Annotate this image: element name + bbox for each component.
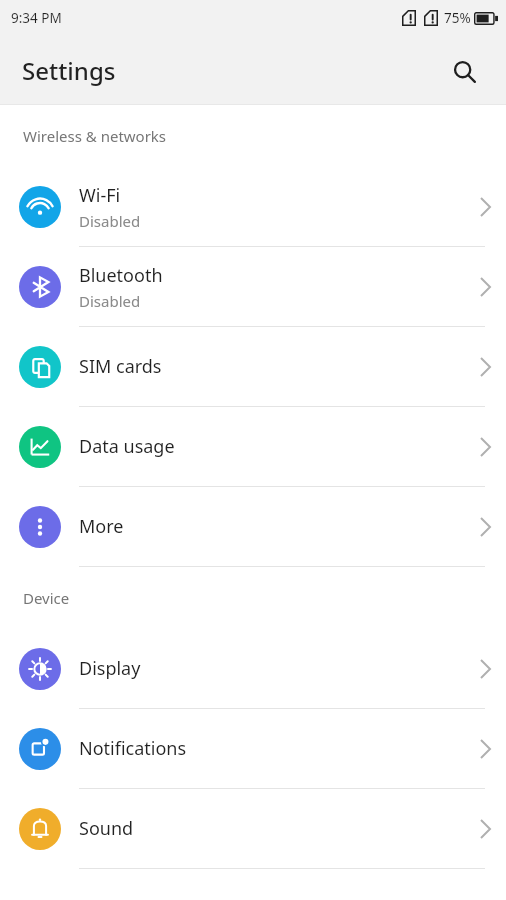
staticText: More xyxy=(79,514,124,539)
button[interactable]: Notifications xyxy=(0,709,506,788)
button[interactable]: Bluetooth xyxy=(0,247,506,326)
staticText: SIM cards xyxy=(79,354,162,379)
staticText: Sound xyxy=(79,816,134,841)
staticText: Device xyxy=(23,588,70,608)
staticText: Wi-Fi xyxy=(79,183,121,208)
button[interactable]: Display xyxy=(0,629,506,708)
button[interactable]: Data usage xyxy=(0,407,506,486)
staticText: 75% xyxy=(444,9,471,27)
button[interactable]: More xyxy=(0,487,506,566)
button[interactable]: Search xyxy=(445,52,483,90)
staticText: Data usage xyxy=(79,434,175,459)
staticText: 9:34 PM xyxy=(11,9,62,27)
staticText: Notifications xyxy=(79,736,187,761)
staticText: Disabled xyxy=(79,291,141,311)
staticText: Wireless & networks xyxy=(23,126,167,146)
staticText: Bluetooth xyxy=(79,263,163,288)
staticText: Disabled xyxy=(79,211,141,231)
button[interactable]: Wi-Fi xyxy=(0,167,506,246)
staticText: Display xyxy=(79,656,141,681)
button[interactable]: Sound xyxy=(0,789,506,868)
button[interactable]: SIM cards xyxy=(0,327,506,406)
staticText: Settings xyxy=(22,54,116,87)
